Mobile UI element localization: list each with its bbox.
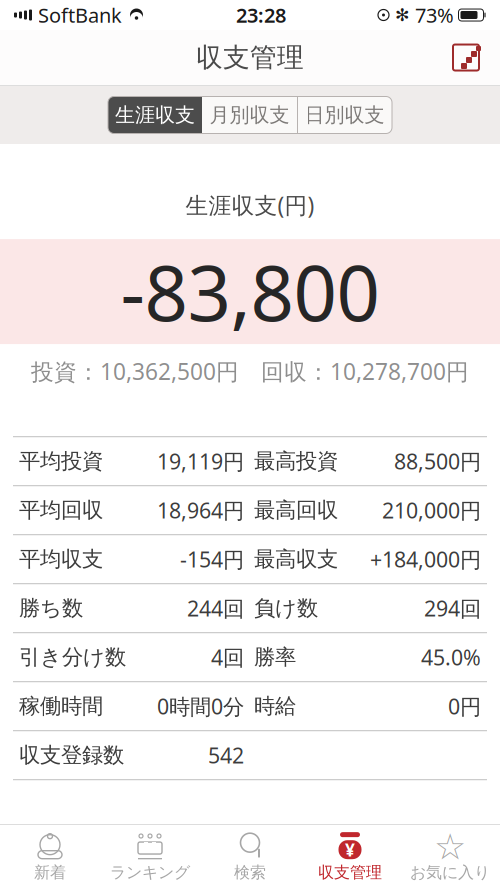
staticText: 生涯収支(円) — [185, 190, 314, 220]
staticText: 542 — [208, 741, 244, 769]
staticText: ☆ — [434, 826, 466, 867]
staticText: 最高投資 — [254, 448, 338, 474]
button[interactable]: 検索 — [200, 825, 300, 889]
staticText: ¥ — [345, 838, 355, 861]
staticText: +184,000円 — [370, 545, 481, 573]
staticText: 収支管理 — [318, 863, 382, 882]
staticText: 平均投資 — [19, 448, 103, 474]
staticText: 新着 — [34, 863, 66, 882]
staticText: ランキング — [110, 863, 190, 882]
button[interactable]: ☆ — [400, 825, 500, 889]
staticText: ✻ — [395, 5, 410, 25]
staticText: -154円 — [180, 545, 244, 573]
button[interactable]: ランキング — [100, 825, 200, 889]
staticText: 0円 — [448, 692, 481, 720]
staticText: 73% — [415, 2, 454, 28]
button[interactable]: ¥ — [300, 825, 400, 889]
staticText: 引き分け数 — [19, 644, 126, 670]
staticText: お気に入り — [410, 863, 490, 882]
staticText: 19,119円 — [157, 447, 244, 475]
staticText: 回収：10,278,700円 — [261, 356, 469, 386]
button[interactable]: 月別収支 — [202, 96, 297, 133]
button[interactable]: 新着 — [0, 825, 100, 889]
staticText: 88,500円 — [394, 447, 481, 475]
button[interactable]: 日別収支 — [297, 96, 392, 133]
staticText: 負け数 — [254, 595, 318, 621]
staticText: 生涯収支 — [115, 103, 195, 127]
staticText: 45.0% — [421, 643, 481, 671]
staticText: 18,964円 — [157, 496, 244, 524]
staticText: 検索 — [234, 863, 266, 882]
staticText: 23:28 — [236, 2, 286, 28]
staticText: 勝ち数 — [19, 595, 83, 621]
staticText: 最高収支 — [254, 546, 338, 572]
staticText: 収支管理 — [196, 41, 304, 74]
staticText: 稼働時間 — [19, 693, 103, 719]
staticText: 4回 — [211, 643, 244, 671]
staticText: 勝率 — [254, 644, 296, 670]
button[interactable]: 生涯収支 — [108, 96, 202, 133]
staticText: 0時間0分 — [157, 692, 244, 720]
staticText: -83,800 — [120, 241, 379, 342]
staticText: 平均回収 — [19, 497, 103, 523]
staticText: 平均収支 — [19, 546, 103, 572]
staticText: 投資：10,362,500円 — [31, 356, 239, 386]
staticText: 210,000円 — [382, 496, 481, 524]
staticText: 日別収支 — [304, 103, 384, 127]
button[interactable]: 編集 — [446, 37, 486, 77]
staticText: SoftBank — [38, 2, 122, 28]
staticText: 月別収支 — [209, 103, 289, 127]
staticText: 時給 — [254, 693, 296, 719]
staticText: 244回 — [187, 594, 244, 622]
staticText: 最高回収 — [254, 497, 338, 523]
staticText: 収支登録数 — [19, 742, 124, 768]
staticText: 294回 — [424, 594, 481, 622]
